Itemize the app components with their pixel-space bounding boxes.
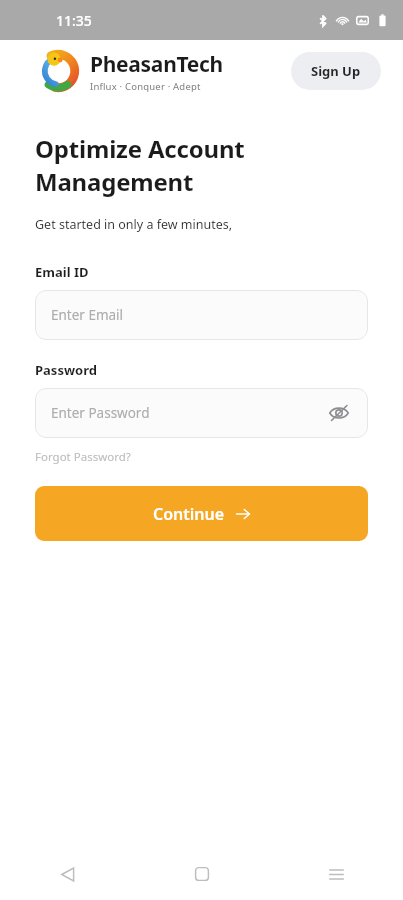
button[interactable]: Home <box>135 848 269 900</box>
button[interactable]: Sign Up <box>291 52 381 90</box>
staticText: Enter Password <box>51 404 326 422</box>
button[interactable]: Show password <box>326 400 352 426</box>
button[interactable]: Continue <box>35 486 368 541</box>
button[interactable]: Back <box>0 848 135 900</box>
staticText: Optimize Account Management <box>35 132 245 198</box>
button[interactable]: Enter Password <box>35 388 368 438</box>
staticText: Get started in only a few minutes, <box>35 216 233 233</box>
staticText: Email ID <box>35 263 89 281</box>
staticText: Continue <box>153 503 225 525</box>
staticText: Sign Up <box>311 62 361 80</box>
staticText: PheasanTech <box>90 50 223 79</box>
staticText: Forgot Password? <box>35 449 131 465</box>
staticText: Password <box>35 361 97 379</box>
button[interactable]: Recent apps <box>269 848 403 900</box>
staticText: Enter Email <box>51 306 352 324</box>
staticText: Influx · Conquer · Adept <box>90 80 201 93</box>
staticText: 11:35 <box>56 11 92 30</box>
button[interactable]: Forgot Password? <box>35 449 131 465</box>
button[interactable]: Enter Email <box>35 290 368 340</box>
